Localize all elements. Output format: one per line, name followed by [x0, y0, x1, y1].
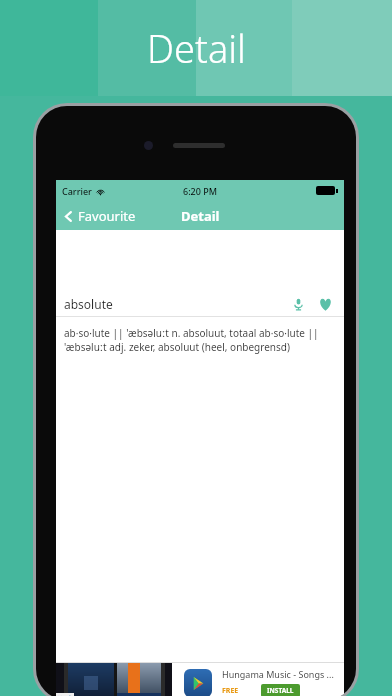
staticText: Carrier: [62, 185, 92, 197]
button[interactable]: Favourite: [315, 294, 336, 315]
staticText: ×: [58, 693, 63, 696]
staticText: Hungama Music - Songs ...: [222, 668, 334, 680]
staticText: FREE: [222, 686, 239, 696]
staticText: INSTALL: [267, 686, 294, 695]
staticText: i: [69, 693, 71, 696]
staticText: ab·so·lute || 'æbsəluːt n. absoluut, tot…: [64, 326, 336, 354]
staticText: absolute: [64, 296, 113, 312]
staticText: Detail: [181, 207, 220, 225]
staticText: Detail: [147, 22, 246, 74]
staticText: 6:20 PM: [183, 185, 217, 197]
staticText: Favourite: [78, 207, 136, 225]
button[interactable]: ×: [56, 662, 344, 696]
button[interactable]: INSTALL: [261, 684, 300, 696]
button[interactable]: Favourite: [56, 204, 144, 228]
button[interactable]: Voice search: [289, 295, 308, 314]
